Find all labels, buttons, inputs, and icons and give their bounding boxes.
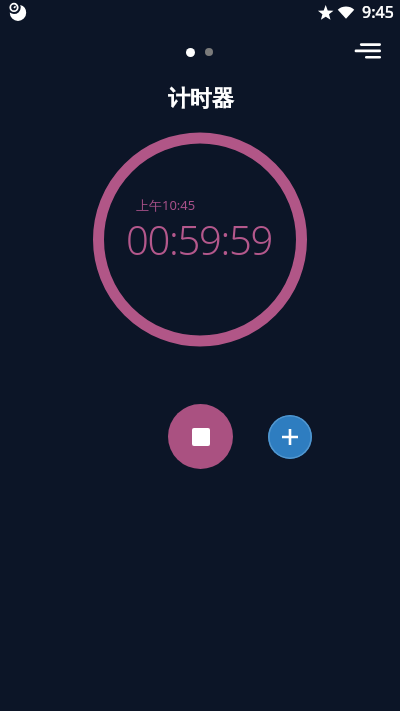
button[interactable] <box>348 34 388 66</box>
staticText: 00:59:59 <box>126 212 273 266</box>
button[interactable] <box>168 404 233 469</box>
button[interactable] <box>268 415 312 459</box>
staticText: 上午10:45 <box>136 196 196 214</box>
staticText: 9:45 <box>362 1 394 23</box>
staticText: 计时器 <box>168 85 234 113</box>
